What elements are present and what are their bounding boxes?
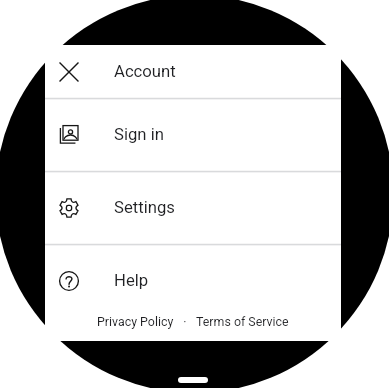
button[interactable]: Settings (45, 172, 341, 244)
staticText: · (174, 314, 196, 329)
button[interactable]: Close (45, 45, 93, 98)
button[interactable]: Help (45, 245, 341, 317)
button[interactable]: Privacy Policy (97, 314, 174, 329)
staticText: Sign in (114, 125, 164, 145)
staticText: Help (114, 271, 149, 291)
button[interactable]: Close (45, 45, 341, 98)
staticText: Settings (114, 198, 175, 218)
button[interactable]: Sign in (45, 99, 341, 171)
button[interactable]: Terms of Service (196, 314, 289, 329)
staticText: Account (114, 62, 176, 82)
